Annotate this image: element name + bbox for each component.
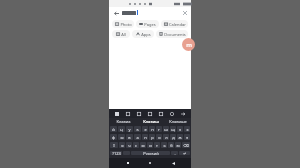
staticText: с xyxy=(135,143,137,148)
button[interactable]: а xyxy=(134,134,141,140)
button[interactable]: Back xyxy=(112,9,120,17)
button[interactable]: ⇧ xyxy=(110,142,118,148)
button[interactable]: ю xyxy=(175,142,181,148)
staticText: Photo xyxy=(120,22,132,27)
button[interactable]: с xyxy=(133,142,139,148)
staticText: д xyxy=(172,135,175,140)
button[interactable]: ↵ xyxy=(179,151,190,155)
staticText: ю xyxy=(176,143,180,148)
button[interactable]: ц xyxy=(118,126,125,132)
staticText: ф xyxy=(112,135,115,140)
button[interactable]: н xyxy=(149,126,155,132)
button[interactable]: Клавиа xyxy=(109,118,137,125)
staticText: . xyxy=(174,151,176,155)
button[interactable]: л xyxy=(163,134,169,140)
button[interactable]: Apps xyxy=(132,30,154,38)
button[interactable]: ж xyxy=(177,134,183,140)
button[interactable]: Recents xyxy=(124,159,132,167)
button[interactable]: Documents xyxy=(156,30,188,38)
staticText: ↵ xyxy=(183,151,187,155)
staticText: Calendar xyxy=(169,22,186,27)
staticText: в xyxy=(128,135,131,140)
button[interactable]: в xyxy=(126,134,133,140)
button[interactable]: г xyxy=(156,126,162,132)
button[interactable]: ?123 xyxy=(110,151,122,155)
button[interactable]: Back xyxy=(169,159,177,167)
staticText: у xyxy=(128,127,131,132)
button[interactable]: Клавише xyxy=(164,118,191,125)
button[interactable]: о xyxy=(156,134,162,140)
staticText: я xyxy=(121,143,124,148)
button[interactable]: Pages xyxy=(136,20,159,28)
button[interactable]: я xyxy=(119,142,125,148)
staticText: н xyxy=(151,127,154,132)
staticText: к xyxy=(136,127,139,132)
button[interactable]: Keyboard tool 2 xyxy=(125,111,131,117)
staticText: м xyxy=(141,143,145,148)
staticText: е xyxy=(144,127,147,132)
button[interactable]: Keyboard tool 4 xyxy=(147,111,153,117)
button[interactable]: щ xyxy=(170,126,176,132)
button[interactable]: Clear search xyxy=(181,9,188,16)
staticText: р xyxy=(151,135,154,140)
staticText: ч xyxy=(128,143,131,148)
staticText: т xyxy=(156,143,158,148)
staticText: ц xyxy=(120,127,123,132)
button[interactable]: д xyxy=(170,134,176,140)
button[interactable]: к xyxy=(134,126,141,132)
button[interactable]: ь xyxy=(161,142,167,148)
button[interactable]: Home xyxy=(146,159,154,167)
staticText: m xyxy=(186,41,192,49)
button[interactable]: ф xyxy=(110,134,117,140)
button[interactable]: р xyxy=(149,134,155,140)
button[interactable]: All xyxy=(112,30,130,38)
staticText: Русский xyxy=(143,151,159,155)
staticText: з xyxy=(179,127,181,132)
staticText: ?123 xyxy=(112,151,121,155)
staticText: Клавиа xyxy=(116,119,131,124)
button[interactable]: й xyxy=(110,126,117,132)
button[interactable]: ⌫ xyxy=(182,142,190,148)
staticText: ж xyxy=(178,135,182,140)
button[interactable]: е xyxy=(142,126,148,132)
staticText: й xyxy=(112,127,115,132)
button[interactable]: Русский xyxy=(131,151,170,155)
button[interactable]: э xyxy=(184,134,190,140)
button[interactable]: т xyxy=(154,142,160,148)
button[interactable]: Keyboard tool 1 xyxy=(114,111,120,117)
button[interactable]: Keyboard tool 3 xyxy=(136,111,142,117)
staticText: и xyxy=(149,143,152,148)
staticText: б xyxy=(170,143,173,148)
button[interactable]: б xyxy=(168,142,174,148)
button[interactable]: Keyboard tool 5 xyxy=(158,111,164,117)
button[interactable] xyxy=(122,11,136,15)
button[interactable]: Account xyxy=(182,38,195,51)
staticText: п xyxy=(144,135,147,140)
button[interactable]: ч xyxy=(126,142,132,148)
button[interactable]: Keyboard tool 7 xyxy=(180,111,186,117)
button[interactable]: у xyxy=(126,126,133,132)
button[interactable]: ы xyxy=(118,134,125,140)
staticText: х xyxy=(186,127,189,132)
staticText: э xyxy=(186,135,188,140)
button[interactable]: м xyxy=(140,142,146,148)
staticText: Клавише xyxy=(169,119,187,124)
staticText: ы xyxy=(120,135,124,140)
staticText: Apps xyxy=(141,32,151,37)
button[interactable]: х xyxy=(184,126,190,132)
staticText: Pages xyxy=(144,22,156,27)
button[interactable]: . xyxy=(171,151,178,155)
button[interactable]: и xyxy=(147,142,153,148)
staticText: All xyxy=(121,32,126,37)
button[interactable]: п xyxy=(142,134,148,140)
button[interactable]: Photo xyxy=(112,20,134,28)
staticText: Клавиш xyxy=(143,119,159,124)
button[interactable]: Calendar xyxy=(161,20,188,28)
button[interactable]: Клавиш xyxy=(137,118,164,125)
button[interactable]: Keyboard tool 6 xyxy=(169,111,175,117)
staticText: ш xyxy=(164,127,168,132)
button[interactable]: ш xyxy=(163,126,169,132)
button[interactable]: з xyxy=(177,126,183,132)
